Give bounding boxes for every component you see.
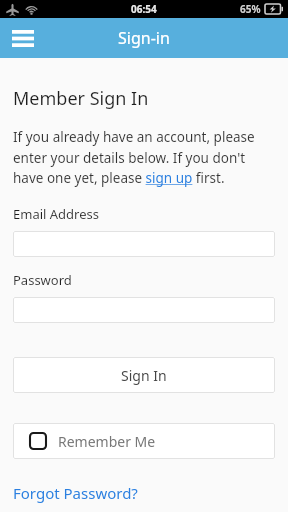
- button[interactable]: Forgot Password?: [13, 483, 138, 503]
- staticText: 65%: [240, 2, 261, 16]
- staticText: Sign In: [121, 366, 167, 385]
- staticText: Forgot Password?: [13, 483, 138, 503]
- button[interactable]: Sign In: [13, 357, 275, 393]
- staticText: Password: [13, 271, 72, 289]
- staticText: If you already have an account, please e…: [13, 128, 275, 187]
- button[interactable]: Text input field: [13, 231, 275, 257]
- button[interactable]: Remember Me: [13, 423, 275, 459]
- staticText: Email Address: [13, 205, 99, 223]
- button[interactable]: Open navigation menu: [6, 21, 40, 55]
- staticText: 06:54: [131, 2, 157, 16]
- staticText: Remember Me: [58, 432, 156, 451]
- staticText: Sign-in: [118, 27, 170, 49]
- staticText: Member Sign In: [13, 86, 149, 111]
- button[interactable]: Text input field: [13, 297, 275, 323]
